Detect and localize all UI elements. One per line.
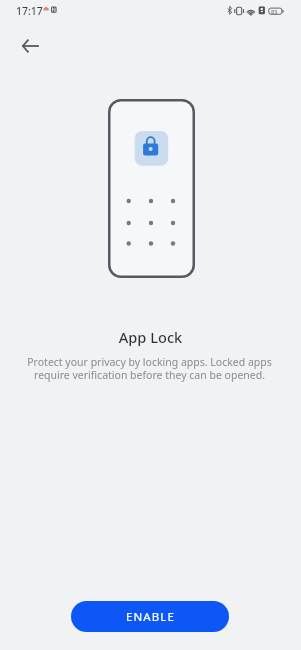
button[interactable]: Back (8, 24, 51, 68)
button[interactable]: ENABLE (71, 601, 229, 632)
staticText: ENABLE (126, 609, 175, 625)
staticText: 17:17 (16, 4, 43, 18)
staticText: App Lock (0, 327, 301, 347)
staticText: Protect your privacy by locking apps. Lo… (12, 355, 287, 382)
staticText: 85 (271, 8, 278, 15)
